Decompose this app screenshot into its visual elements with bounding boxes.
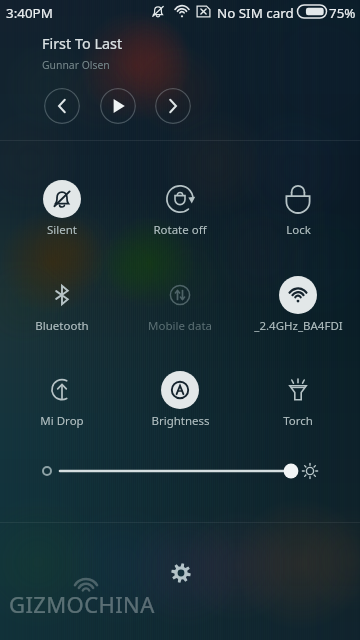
staticText: Silent: [47, 222, 77, 238]
staticText: Rotate off: [153, 222, 207, 238]
button[interactable]: Next: [155, 88, 191, 124]
staticText: Mobile data: [148, 318, 212, 334]
staticText: Bluetooth: [35, 318, 89, 334]
button[interactable]: Play: [100, 88, 136, 124]
button[interactable]: Brightness: [36, 459, 324, 485]
staticText: First To Last: [42, 34, 123, 54]
staticText: Torch: [283, 413, 313, 429]
staticText: GIZMOCHINA: [9, 589, 155, 619]
button[interactable]: Lock: [241, 174, 355, 236]
staticText: 3:40PM: [6, 4, 53, 22]
button[interactable]: Mi Drop: [5, 365, 119, 427]
button[interactable]: Previous: [44, 88, 80, 124]
staticText: Mi Drop: [40, 413, 84, 429]
button[interactable]: Rotate off: [123, 174, 237, 236]
button[interactable]: Brightness: [123, 365, 237, 427]
button[interactable]: Bluetooth: [5, 270, 119, 332]
button[interactable]: Torch: [241, 365, 355, 427]
staticText: No SIM card: [217, 4, 294, 22]
button[interactable]: Mobile data: [123, 270, 237, 332]
staticText: Gunnar Olsen: [42, 58, 110, 72]
button[interactable]: Settings: [165, 557, 197, 589]
button[interactable]: _2.4GHz_BA4FDI: [241, 270, 355, 332]
staticText: Lock: [286, 222, 311, 238]
staticText: 75%: [329, 4, 356, 22]
button[interactable]: Silent: [5, 174, 119, 236]
staticText: _2.4GHz_BA4FDI: [254, 318, 343, 334]
staticText: Brightness: [151, 413, 210, 429]
